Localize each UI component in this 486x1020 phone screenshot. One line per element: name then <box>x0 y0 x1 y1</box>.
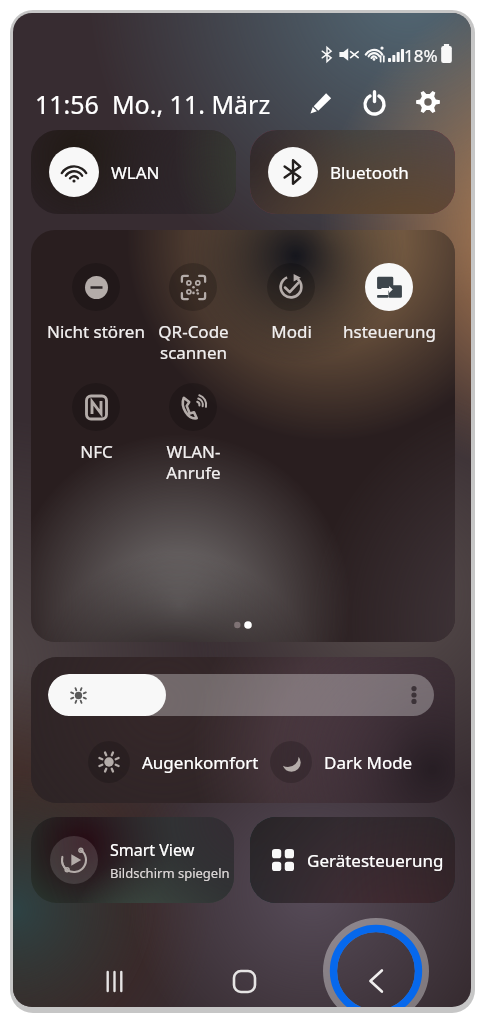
button[interactable]: Augenkomfort <box>88 741 259 783</box>
staticText: WLAN <box>111 161 160 184</box>
button[interactable]: Bluetooth <box>250 130 455 214</box>
button[interactable]: Helligkeit <box>48 674 434 716</box>
button[interactable]: WLAN- Anrufe <box>141 383 245 484</box>
staticText: Augenkomfort <box>142 751 259 774</box>
button[interactable]: hsteuerung <box>337 263 441 343</box>
button[interactable]: Startbildschirm <box>214 953 274 1007</box>
button[interactable]: QR-Code scannen <box>141 263 245 364</box>
button[interactable]: NFC <box>44 383 148 463</box>
staticText: 11:56 Mo., 11. März <box>35 87 271 121</box>
staticText: hsteuerung <box>343 320 436 343</box>
button[interactable]: Dark Mode <box>270 741 413 783</box>
button[interactable]: Zurück <box>346 953 406 1007</box>
button[interactable]: Bearbeiten <box>297 78 345 126</box>
button[interactable]: WLAN <box>31 130 236 214</box>
staticText: Nicht stören <box>47 320 145 343</box>
button[interactable]: Modi <box>239 263 343 343</box>
button[interactable]: Ausschalten <box>350 78 398 126</box>
staticText: 18% <box>404 44 438 67</box>
staticText: Bildschirm spiegeln <box>110 864 230 882</box>
staticText: WLAN- Anrufe <box>166 440 221 484</box>
staticText: Gerätesteuerung <box>307 849 444 872</box>
staticText: Dark Mode <box>324 751 413 774</box>
button[interactable]: Einstellungen <box>404 78 452 126</box>
button[interactable]: Letzte Apps <box>84 953 144 1007</box>
staticText: Smart View <box>110 839 195 861</box>
staticText: Bluetooth <box>330 161 409 184</box>
button[interactable]: Nicht stören <box>44 263 148 343</box>
button[interactable]: Smart View <box>31 817 234 903</box>
staticText: QR-Code scannen <box>158 320 229 364</box>
button[interactable]: Gerätesteuerung <box>250 817 455 903</box>
staticText: Modi <box>271 320 312 343</box>
staticText: NFC <box>80 440 113 463</box>
